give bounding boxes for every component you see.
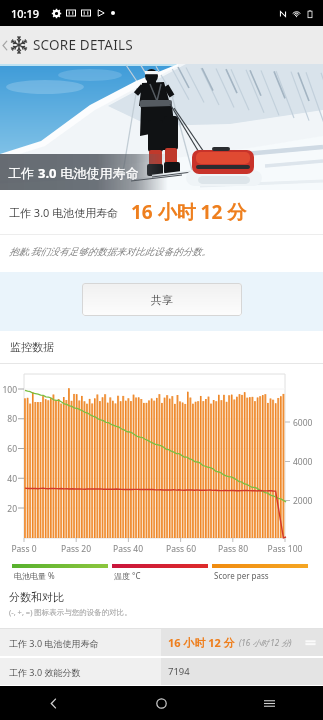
staticText: 温度 °C [114, 570, 141, 581]
staticText: 电池电量 % [14, 570, 55, 581]
button[interactable]: 工作 3.0 效能分数 [0, 658, 323, 685]
staticText: 100 [0, 384, 17, 396]
staticText: 16 小时 12 分 [131, 199, 247, 225]
staticText: (-, +, =) 图标表示与您的设备的对比。 [9, 607, 132, 617]
staticText: SCORE DETAILS [33, 36, 133, 54]
staticText: 4000 [293, 456, 313, 468]
staticText: 80 [0, 413, 17, 425]
button[interactable]: Back [0, 686, 107, 720]
staticText: 工作 3.0 效能分数 [9, 666, 81, 678]
staticText: 16 小时 12 分 [168, 635, 235, 650]
staticText: 3.0 [38, 164, 57, 182]
staticText: Pass 20 [55, 543, 97, 555]
staticText: 监控数据 [10, 340, 54, 354]
button[interactable]: 共享 [82, 283, 242, 316]
staticText: 10:19 [11, 6, 40, 21]
staticText: 电池使用寿命 [57, 164, 139, 182]
staticText: Pass 60 [160, 543, 202, 555]
staticText: 工作 3.0 电池使用寿命 [9, 637, 99, 649]
staticText: Pass 40 [107, 543, 149, 555]
staticText: Pass 0 [3, 543, 45, 555]
staticText: 6000 [293, 417, 313, 429]
staticText: Score per pass [214, 570, 269, 581]
staticText: 40 [0, 473, 17, 485]
button[interactable]: Back [0, 26, 10, 64]
staticText: 工作 3.0 电池使用寿命 [9, 205, 119, 220]
button[interactable]: Recent apps [215, 686, 323, 720]
staticText: 分数和对比 [9, 590, 64, 604]
staticText: 2000 [293, 495, 313, 507]
staticText: 60 [0, 443, 17, 455]
staticText: 工作 [8, 164, 38, 182]
staticText: 共享 [151, 293, 173, 307]
staticText: Pass 100 [264, 543, 306, 555]
staticText: 抱歉,我们没有足够的数据来对比此设备的分数。 [9, 245, 211, 258]
staticText: Pass 80 [212, 543, 254, 555]
staticText: 20 [0, 503, 17, 515]
staticText: (16 小时 12 分) [239, 637, 292, 648]
button[interactable]: 工作 3.0 电池使用寿命 [0, 629, 323, 656]
button[interactable]: Home [107, 686, 215, 720]
staticText: 7194 [168, 665, 190, 678]
